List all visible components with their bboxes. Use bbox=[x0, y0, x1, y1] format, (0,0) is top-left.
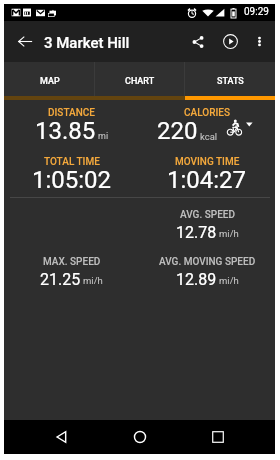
button[interactable]: Recent apps bbox=[196, 420, 240, 454]
staticText: CALORIES bbox=[184, 107, 230, 119]
staticText: mi/h bbox=[219, 275, 239, 286]
staticText: STATS bbox=[217, 76, 244, 87]
staticText: CHART bbox=[125, 76, 155, 87]
staticText: TOTAL TIME bbox=[44, 156, 100, 168]
button[interactable]: MOVING TIME bbox=[139, 156, 275, 196]
button[interactable]: Activity type bbox=[226, 118, 253, 135]
staticText: AVG. MOVING SPEED bbox=[159, 256, 256, 268]
button[interactable]: Home bbox=[118, 420, 162, 454]
staticText: 13.85 bbox=[35, 117, 96, 145]
staticText: DISTANCE bbox=[48, 107, 95, 119]
staticText: 3 Market Hill bbox=[44, 34, 130, 52]
staticText: 21.25 bbox=[40, 270, 81, 289]
staticText: 1:04:27 bbox=[167, 166, 247, 194]
staticText: MOVING TIME bbox=[175, 156, 240, 168]
button[interactable]: Navigate up bbox=[10, 21, 39, 62]
staticText: AVG. SPEED bbox=[180, 209, 235, 221]
staticText: 12.78 bbox=[176, 223, 217, 242]
button[interactable]: AVG. SPEED bbox=[139, 209, 275, 240]
button[interactable]: Back bbox=[39, 420, 83, 454]
button[interactable]: AVG. MOVING SPEED bbox=[139, 256, 275, 287]
button[interactable]: DISTANCE bbox=[4, 107, 139, 147]
staticText: kcal bbox=[200, 131, 218, 142]
staticText: MAP bbox=[40, 76, 60, 87]
staticText: 12.89 bbox=[176, 270, 217, 289]
button[interactable]: MAX. SPEED bbox=[4, 256, 139, 287]
staticText: 220 bbox=[157, 117, 198, 145]
button[interactable]: MAP bbox=[4, 62, 95, 98]
button[interactable]: CALORIES bbox=[139, 107, 275, 147]
staticText: MAX. SPEED bbox=[43, 256, 101, 268]
button[interactable]: CHART bbox=[95, 62, 185, 98]
staticText: 1:05:02 bbox=[32, 166, 112, 194]
staticText: mi/h bbox=[219, 228, 239, 239]
button[interactable]: Play bbox=[214, 21, 247, 62]
staticText: 09:29 bbox=[244, 6, 269, 18]
button[interactable]: TOTAL TIME bbox=[4, 156, 139, 196]
button[interactable]: Share bbox=[182, 21, 214, 62]
staticText: mi bbox=[98, 131, 109, 142]
button[interactable]: More options bbox=[247, 21, 271, 62]
staticText: mi/h bbox=[83, 275, 103, 286]
button[interactable]: STATS bbox=[185, 62, 275, 98]
